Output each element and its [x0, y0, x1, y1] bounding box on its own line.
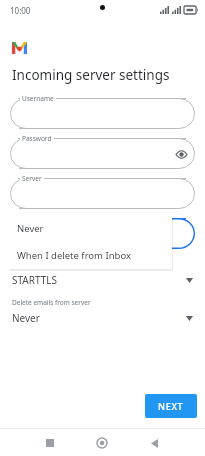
staticText: Incoming server settings	[12, 66, 170, 84]
button[interactable]: Home	[91, 432, 113, 454]
button[interactable]: Password	[10, 138, 195, 169]
staticText: Password	[22, 134, 52, 143]
staticText: NEXT	[158, 400, 184, 412]
staticText: Never	[17, 222, 44, 235]
button[interactable]: Port	[10, 218, 195, 249]
staticText: When I delete from Inbox	[17, 249, 131, 262]
button[interactable]: When I delete from Inbox	[8, 242, 172, 269]
button[interactable]: Security type	[0, 260, 205, 287]
staticText: Username	[22, 94, 54, 103]
button[interactable]: Recents	[39, 432, 61, 454]
staticText: Delete emails from server	[12, 298, 91, 307]
button[interactable]: Back	[143, 432, 165, 454]
staticText: 10:00	[10, 5, 31, 16]
button[interactable]: Delete emails from server	[0, 298, 205, 325]
staticText: STARTTLS	[12, 273, 186, 287]
button[interactable]: NEXT	[145, 394, 197, 418]
button[interactable]: Server	[10, 178, 195, 209]
button[interactable]: Never	[8, 215, 172, 242]
button[interactable]: Username	[10, 98, 195, 129]
button[interactable]: Show password	[173, 146, 189, 162]
staticText: Server	[22, 174, 42, 183]
staticText: Never	[12, 311, 186, 325]
